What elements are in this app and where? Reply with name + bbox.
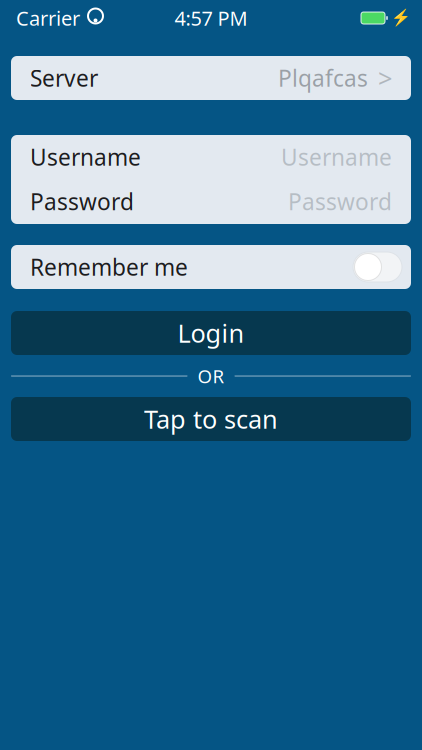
staticText: Password	[30, 186, 134, 216]
staticText: Remember me	[30, 252, 188, 282]
button[interactable]: Tap to scan	[11, 397, 411, 441]
button[interactable]: Password	[11, 179, 411, 224]
button[interactable]: Login	[11, 311, 411, 355]
staticText: Plqafcas	[278, 63, 368, 93]
button[interactable]: Remember me	[11, 245, 411, 289]
staticText: Carrier	[16, 5, 80, 31]
staticText: Username	[281, 142, 392, 172]
button[interactable]: Username	[11, 135, 411, 179]
staticText: OR	[197, 364, 224, 388]
staticText: 4:57 PM	[174, 5, 247, 31]
button[interactable]: Server	[11, 56, 411, 100]
staticText: ⚡	[391, 9, 411, 27]
staticText: Tap to scan	[144, 402, 278, 436]
staticText: Username	[30, 142, 141, 172]
staticText: Server	[30, 63, 98, 93]
staticText: >	[378, 61, 392, 95]
staticText: Login	[177, 316, 244, 350]
staticText: Password	[288, 186, 392, 216]
